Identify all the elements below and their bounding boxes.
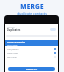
staticText: Merge duplicates (7, 41, 26, 44)
button[interactable]: Maria Lopez (7, 51, 56, 55)
button[interactable]: MERGE ALL (8, 67, 55, 71)
staticText: MERGE (20, 2, 44, 11)
staticText: CONTACTS (7, 26, 15, 28)
staticText: Tap to review (7, 44, 18, 46)
staticText: duplicate contacts (17, 11, 47, 16)
button[interactable]: Scan (50, 28, 56, 31)
button[interactable]: Merge duplicates (5, 40, 58, 46)
staticText: Alex Johnson (7, 48, 19, 51)
staticText: Duplicates (7, 28, 21, 31)
button[interactable]: Sam Carter (7, 55, 56, 59)
button[interactable]: Alex Johnson (7, 47, 56, 51)
staticText: Maria Lopez (7, 52, 18, 55)
staticText: Sam Carter (7, 56, 17, 59)
staticText: MERGE ALL (26, 68, 38, 71)
